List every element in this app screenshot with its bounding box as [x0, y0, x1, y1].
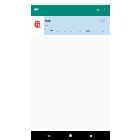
- staticText: abc: [101, 20, 105, 23]
- staticText: (: [45, 28, 46, 31]
- staticText: 12-34: [99, 17, 106, 20]
- staticText: 連絡先: [34, 8, 39, 10]
- button[interactable]: Home: [63, 131, 77, 140]
- button[interactable]: test: [31, 16, 110, 35]
- button[interactable]: Recent apps: [84, 131, 98, 140]
- button[interactable]: Search: [94, 6, 102, 14]
- button[interactable]: More options: [100, 5, 108, 13]
- staticText: test: [45, 23, 49, 26]
- button[interactable]: Back: [41, 131, 55, 140]
- staticText: test: [45, 18, 50, 23]
